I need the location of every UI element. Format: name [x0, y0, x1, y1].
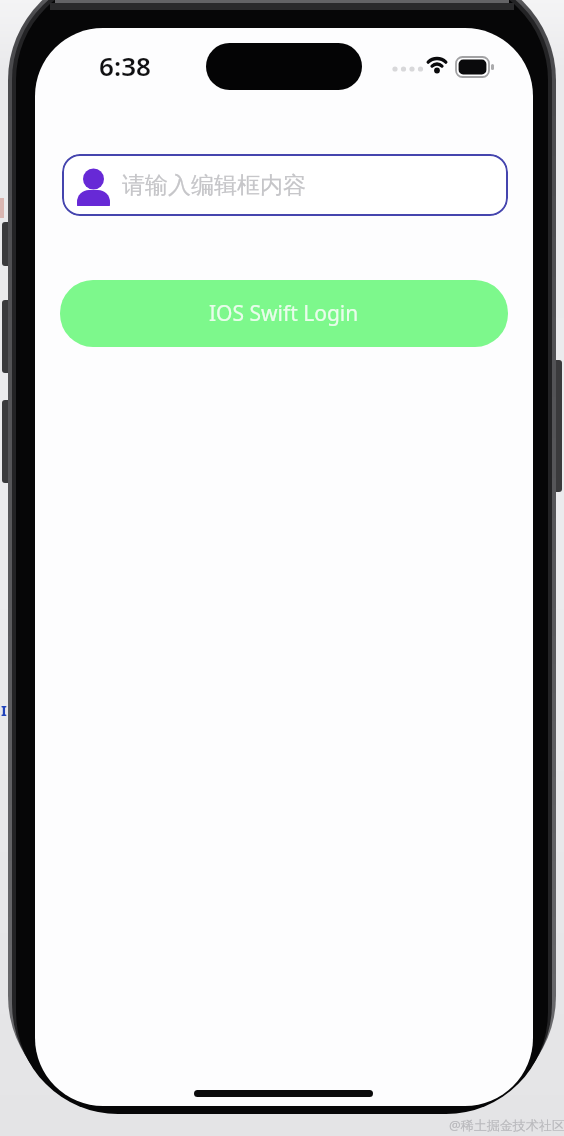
button[interactable]: IOS Swift Login [60, 280, 508, 347]
staticText: I [1, 700, 7, 720]
staticText: 6:38 [99, 48, 151, 82]
button[interactable]: 请输入编辑框内容 [62, 154, 508, 216]
staticText: 请输入编辑框内容 [122, 171, 306, 200]
staticText: @稀土掘金技术社区 [449, 1116, 564, 1134]
staticText: IOS Swift Login [209, 299, 359, 328]
